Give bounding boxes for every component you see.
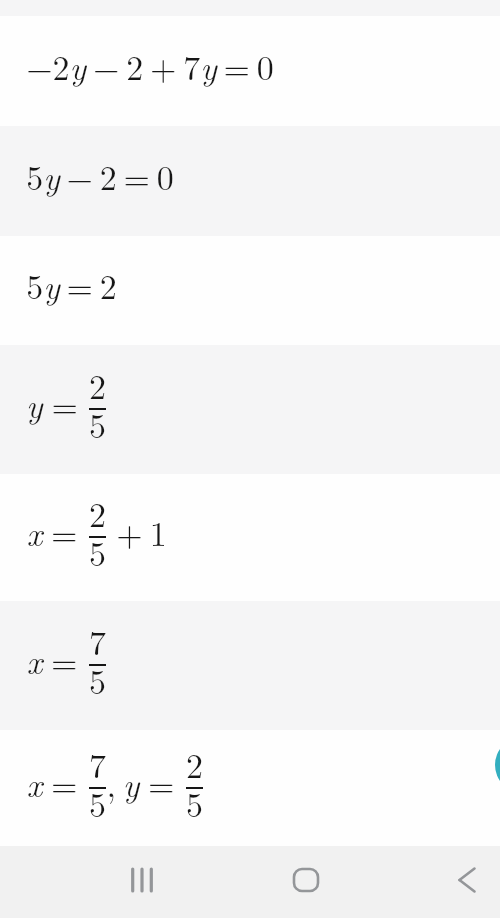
staticText: 2 — [89, 361, 106, 409]
staticText: 7 — [89, 617, 106, 665]
button[interactable]: Back — [435, 844, 499, 916]
staticText: x = — [26, 636, 78, 684]
button[interactable]: Ask a question — [495, 737, 500, 793]
button[interactable]: x = — [0, 474, 500, 601]
staticText: 5 — [89, 779, 106, 827]
staticText: 5 — [89, 528, 106, 576]
staticText: 5y = 2 — [26, 261, 117, 309]
staticText: 5y − 2 = 0 — [26, 152, 174, 200]
staticText: y = — [26, 380, 78, 428]
staticText: , y = — [106, 759, 175, 807]
button[interactable]: Recent apps — [110, 844, 174, 916]
staticText: −2y − 2 + 7y = 0 — [26, 42, 274, 90]
staticText: 7 — [89, 740, 106, 788]
button[interactable]: x = — [0, 601, 500, 730]
staticText: x = — [26, 759, 78, 807]
button[interactable]: Home — [274, 844, 338, 916]
button[interactable]: x = — [0, 730, 500, 846]
staticText: 2 — [89, 489, 106, 537]
staticText: + 1 — [116, 508, 167, 556]
button[interactable]: y = — [0, 345, 500, 474]
staticText: 5 — [186, 779, 203, 827]
button[interactable]: −2y − 2 + 7y = 0 — [0, 16, 500, 126]
staticText: x = — [26, 508, 78, 556]
staticText: 5 — [89, 400, 106, 448]
button[interactable]: 5y = 2 — [0, 236, 500, 345]
staticText: 5 — [89, 656, 106, 704]
button[interactable]: 5y − 2 = 0 — [0, 126, 500, 236]
staticText: 2 — [186, 740, 203, 788]
